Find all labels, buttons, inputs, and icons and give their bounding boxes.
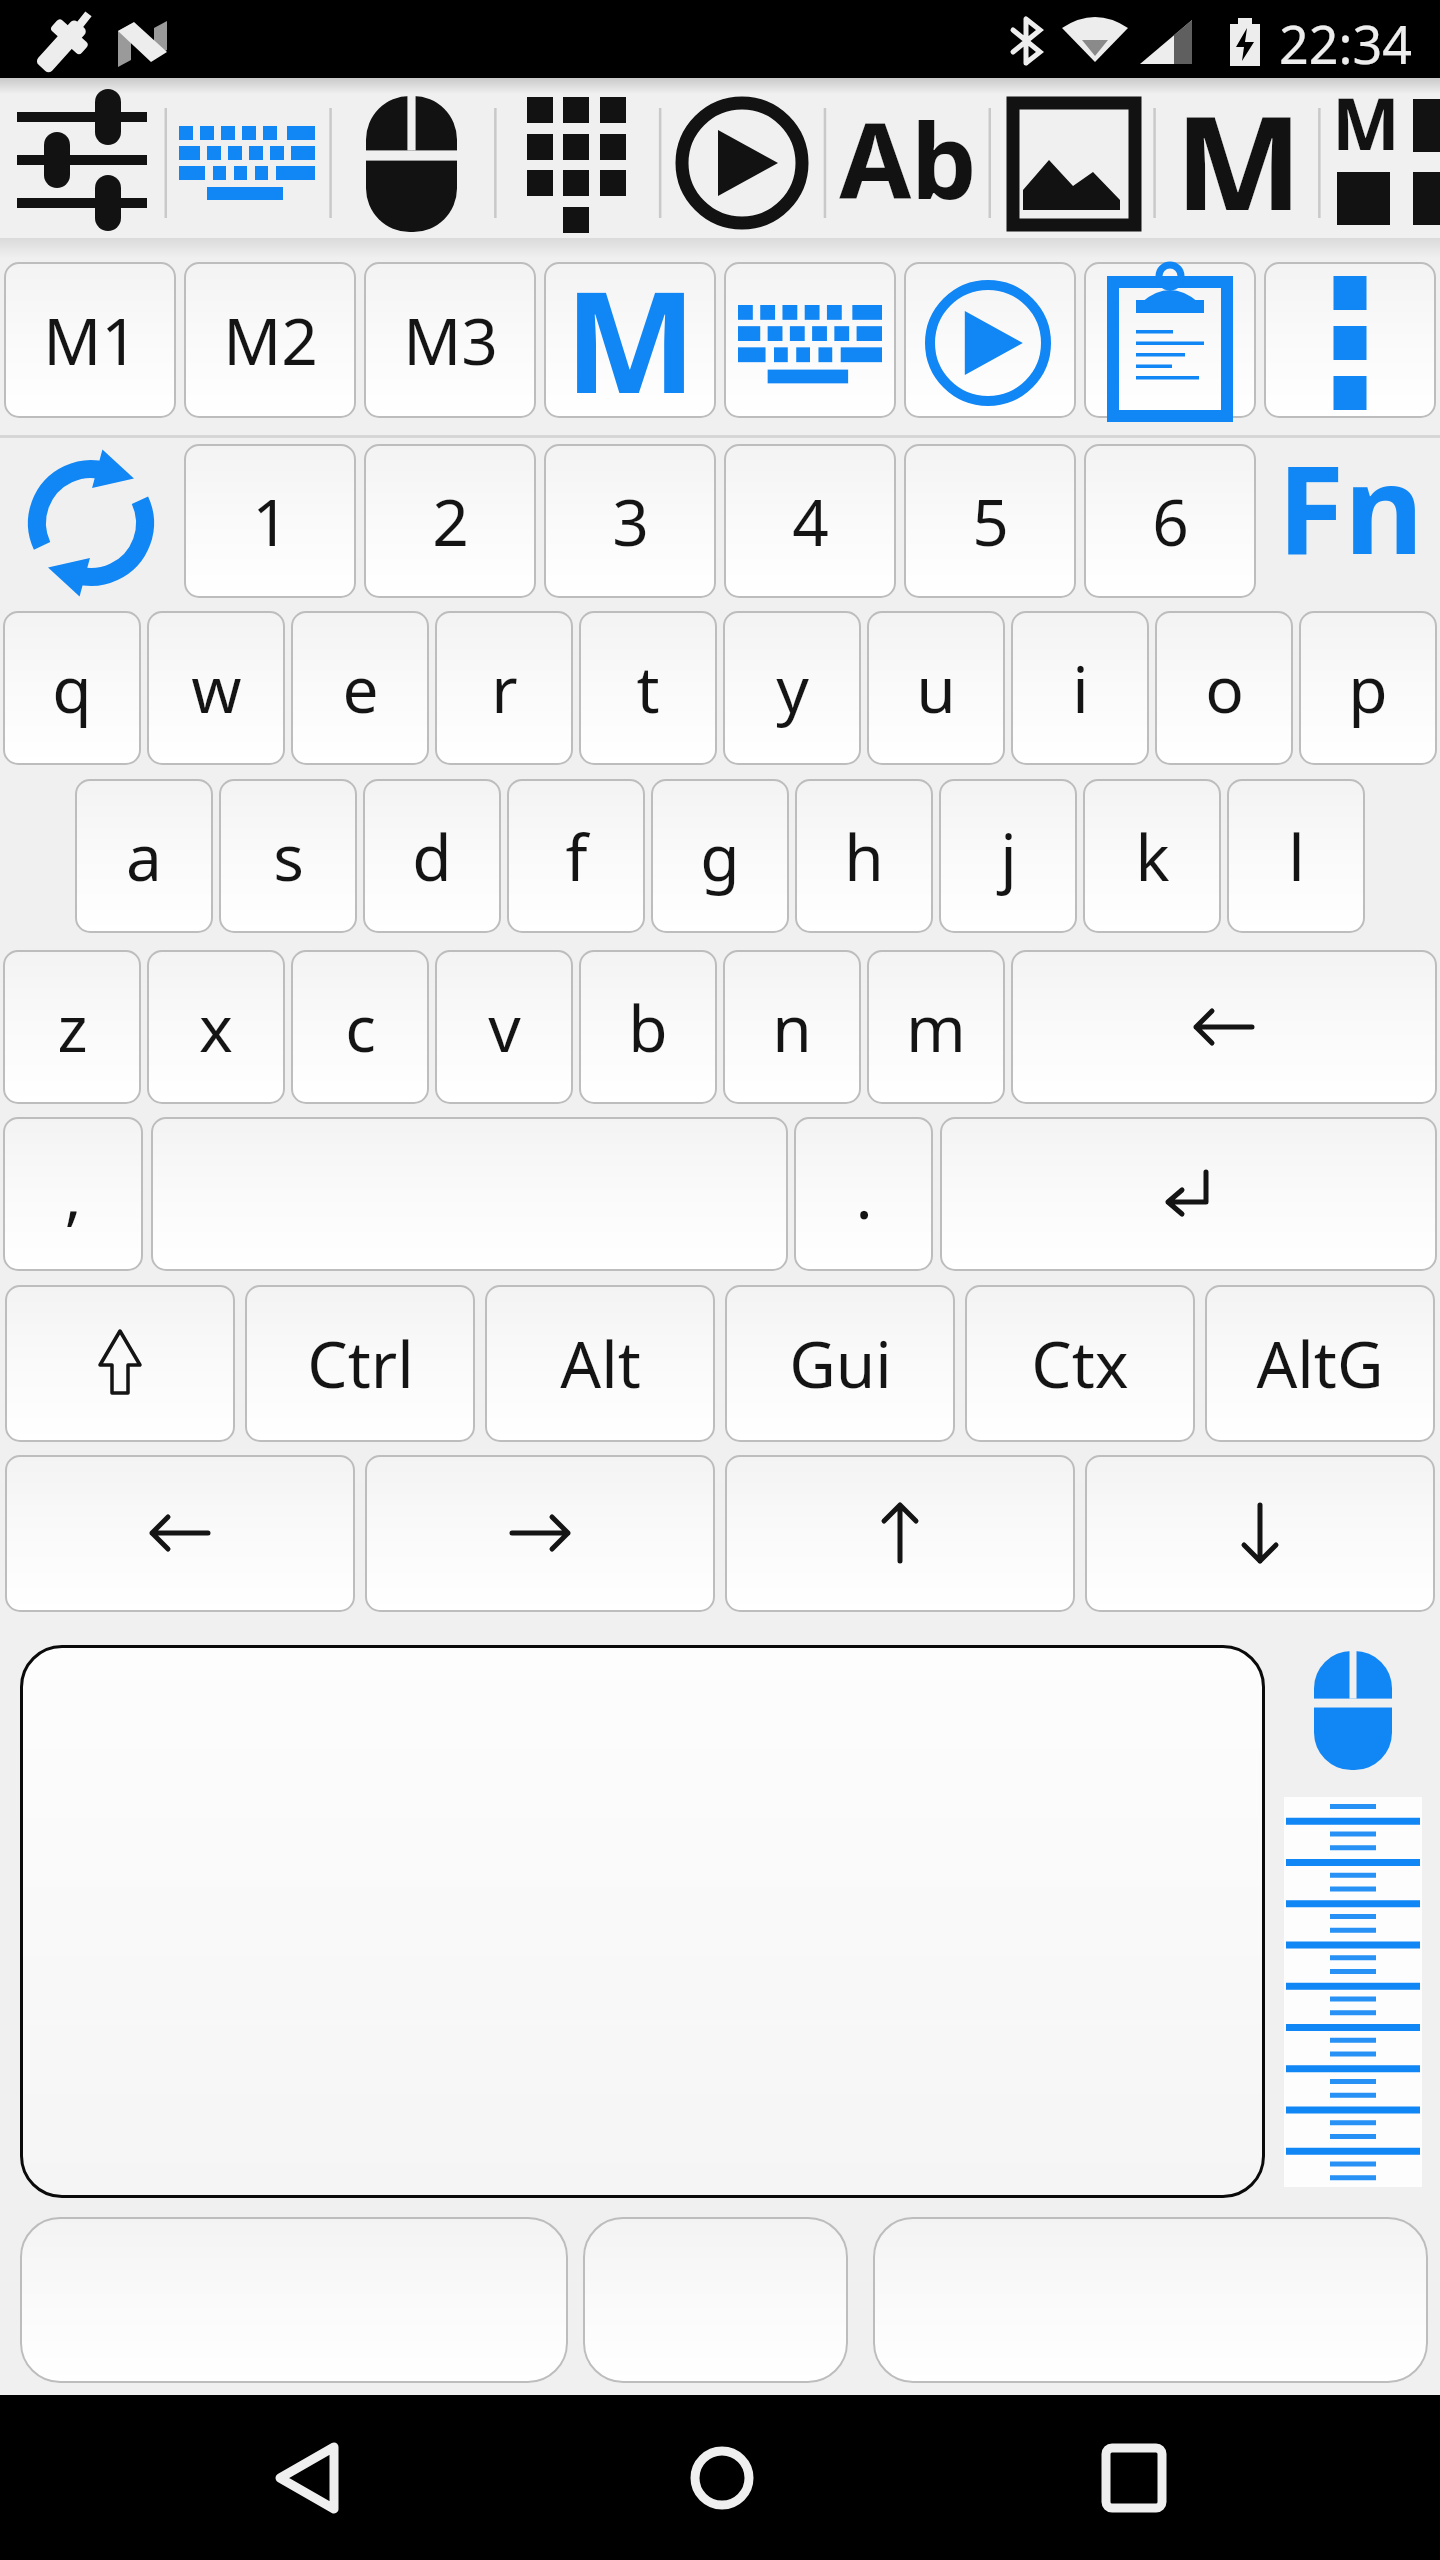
staticText: u	[916, 645, 956, 732]
button[interactable]: f	[507, 779, 645, 933]
button[interactable]: Ctx	[965, 1285, 1195, 1442]
button[interactable]: t	[579, 611, 717, 765]
button[interactable]: M3	[364, 262, 536, 418]
button[interactable]	[1085, 1455, 1435, 1612]
staticText: q	[52, 645, 92, 732]
staticText: 5	[972, 478, 1009, 565]
staticText: Ctx	[1031, 1320, 1129, 1407]
staticText: d	[412, 813, 452, 900]
staticText: 2	[432, 478, 469, 565]
button[interactable]	[873, 2217, 1428, 2383]
button[interactable]: l	[1227, 779, 1365, 933]
button[interactable]	[724, 262, 896, 418]
button[interactable]	[583, 2217, 848, 2383]
staticText: a	[126, 813, 162, 900]
button[interactable]: r	[435, 611, 573, 765]
button[interactable]: 5	[904, 444, 1076, 598]
button[interactable]: .	[794, 1117, 933, 1271]
button[interactable]: M1	[4, 262, 176, 418]
button[interactable]: o	[1155, 611, 1293, 765]
button[interactable]: m	[867, 950, 1005, 1104]
button[interactable]: e	[291, 611, 429, 765]
staticText: f	[565, 813, 588, 900]
button[interactable]: w	[147, 611, 285, 765]
staticText: v	[488, 984, 521, 1071]
button[interactable]: Ctrl	[245, 1285, 475, 1442]
staticText: y	[776, 645, 809, 732]
button[interactable]: M2	[184, 262, 356, 418]
button[interactable]: 1	[184, 444, 356, 598]
staticText: b	[628, 984, 668, 1071]
staticText: c	[345, 984, 376, 1071]
staticText: r	[491, 645, 518, 732]
staticText: h	[844, 813, 884, 900]
staticText: p	[1348, 645, 1388, 732]
staticText: 4	[792, 478, 829, 565]
button[interactable]	[20, 2217, 568, 2383]
button[interactable]	[904, 262, 1076, 418]
button[interactable]: a	[75, 779, 213, 933]
button[interactable]	[151, 1117, 788, 1271]
button[interactable]: 4	[724, 444, 896, 598]
button[interactable]	[940, 1117, 1437, 1271]
button[interactable]: c	[291, 950, 429, 1104]
staticText: s	[273, 813, 304, 900]
staticText: w	[191, 645, 242, 732]
staticText: x	[199, 984, 233, 1071]
staticText: i	[1072, 645, 1089, 732]
button[interactable]: h	[795, 779, 933, 933]
staticText: M	[1174, 70, 1303, 210]
staticText: g	[700, 813, 740, 900]
button[interactable]: b	[579, 950, 717, 1104]
staticText: ,	[64, 1151, 82, 1238]
button[interactable]	[1284, 1797, 1422, 2187]
button[interactable]: u	[867, 611, 1005, 765]
staticText: z	[57, 984, 88, 1071]
button[interactable]: 3	[544, 444, 716, 598]
button[interactable]: M	[544, 262, 716, 418]
button[interactable]	[20, 1645, 1265, 2198]
button[interactable]: k	[1083, 779, 1221, 933]
staticText: k	[1135, 813, 1170, 900]
button[interactable]: d	[363, 779, 501, 933]
staticText: t	[636, 645, 660, 732]
button[interactable]: x	[147, 950, 285, 1104]
staticText: 6	[1152, 478, 1189, 565]
staticText: 22:34	[1279, 8, 1412, 70]
staticText: Ab	[839, 88, 977, 223]
staticText: 1	[252, 478, 289, 565]
button[interactable]: z	[3, 950, 141, 1104]
button[interactable]: ,	[3, 1117, 143, 1271]
button[interactable]: Gui	[725, 1285, 955, 1442]
button[interactable]: v	[435, 950, 573, 1104]
staticText: Ctrl	[307, 1320, 414, 1407]
button[interactable]	[1084, 262, 1256, 418]
staticText: M	[564, 243, 697, 399]
button[interactable]	[365, 1455, 715, 1612]
button[interactable]: s	[219, 779, 357, 933]
button[interactable]	[1264, 262, 1436, 418]
button[interactable]: y	[723, 611, 861, 765]
button[interactable]: 6	[1084, 444, 1256, 598]
staticText: o	[1205, 645, 1244, 732]
button[interactable]	[725, 1455, 1075, 1612]
staticText: j	[1000, 813, 1017, 900]
button[interactable]	[5, 1285, 235, 1442]
staticText: Fn	[1277, 424, 1424, 578]
button[interactable]: n	[723, 950, 861, 1104]
button[interactable]: q	[3, 611, 141, 765]
button[interactable]	[1011, 950, 1437, 1104]
button[interactable]: g	[651, 779, 789, 933]
button[interactable]: p	[1299, 611, 1437, 765]
staticText: M2	[223, 297, 318, 384]
button[interactable]: 2	[364, 444, 536, 598]
staticText: Alt	[560, 1320, 641, 1407]
button[interactable]	[5, 1455, 355, 1612]
button[interactable]: Alt	[485, 1285, 715, 1442]
button[interactable]: AltG	[1205, 1285, 1435, 1442]
staticText: M3	[403, 297, 498, 384]
button[interactable]: i	[1011, 611, 1149, 765]
staticText: .	[855, 1151, 873, 1238]
button[interactable]: j	[939, 779, 1077, 933]
staticText: M	[1332, 73, 1394, 153]
